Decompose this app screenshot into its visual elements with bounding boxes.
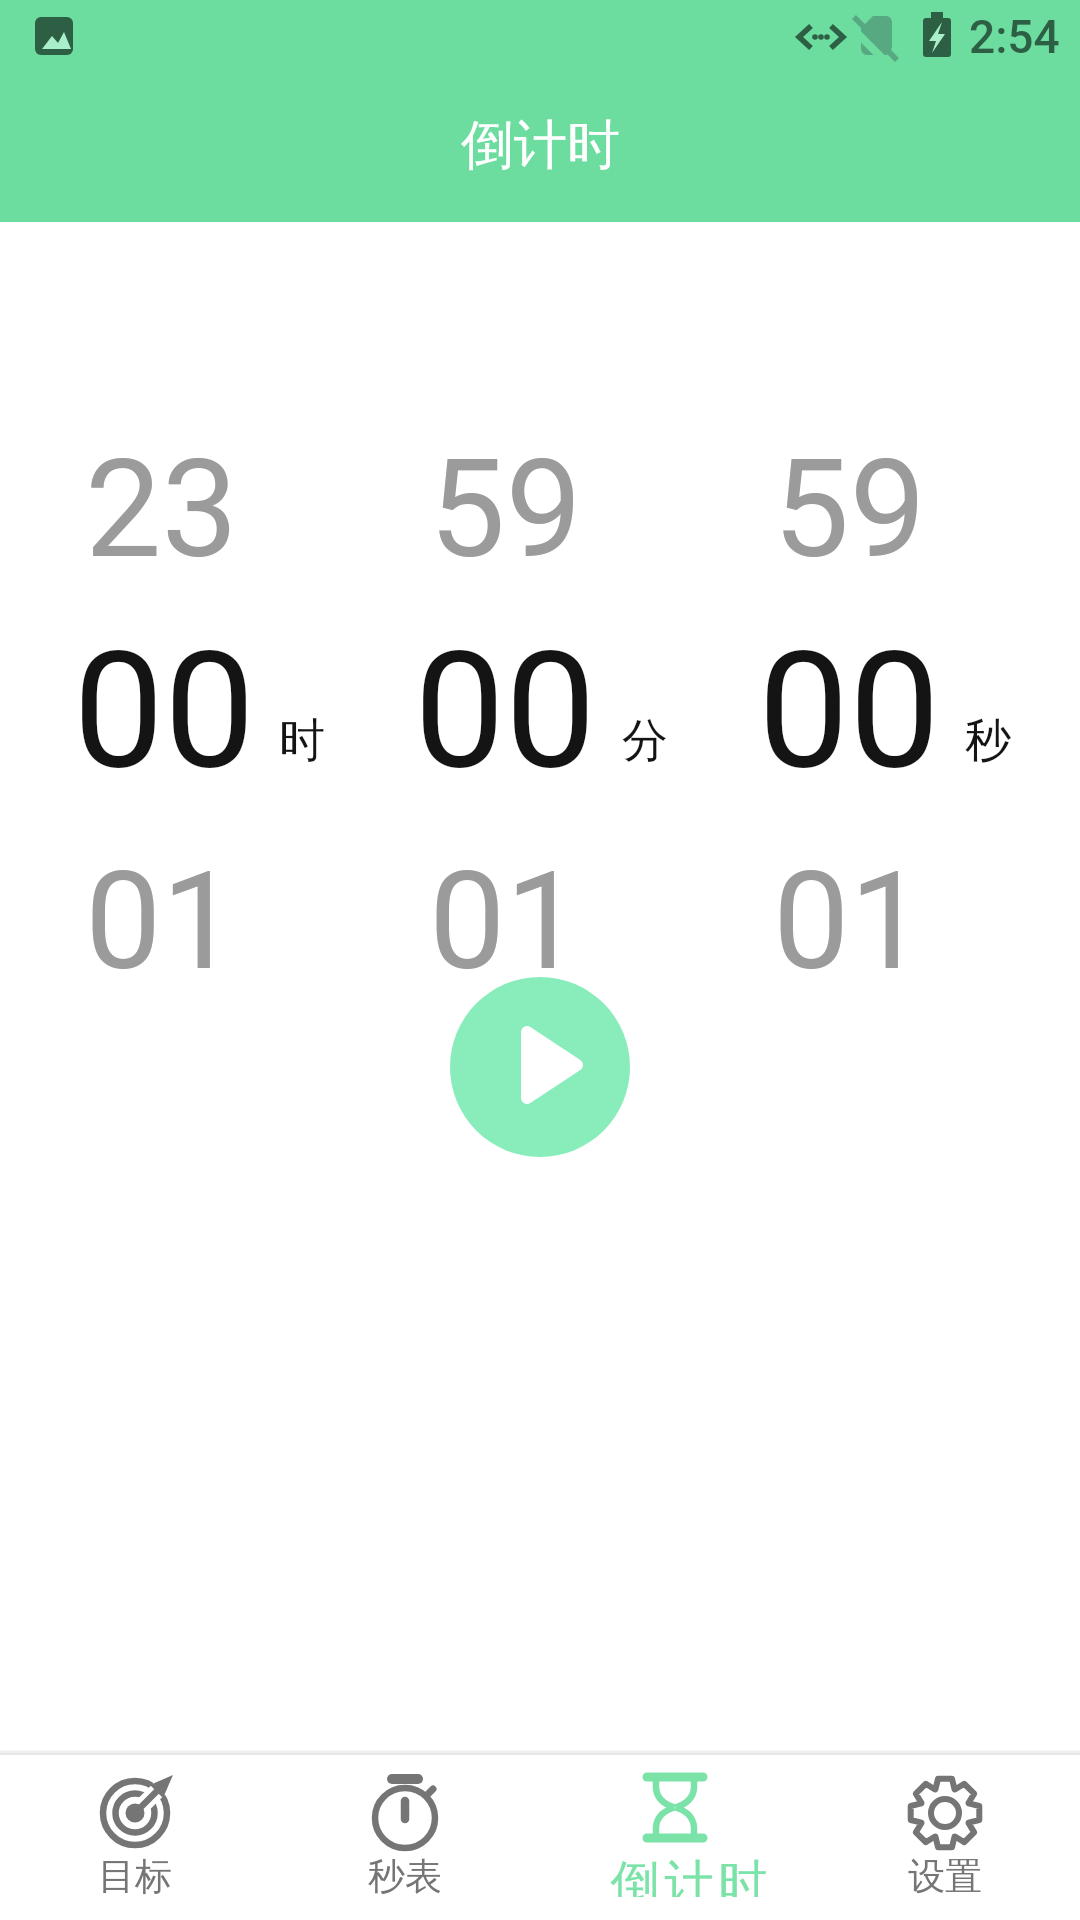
staticText: 秒 (965, 712, 1011, 770)
staticText: 01 (773, 842, 926, 1001)
staticText: 倒计时 (461, 112, 620, 179)
button[interactable]: 设置 (810, 1755, 1080, 1920)
staticText: 00 (73, 616, 256, 806)
staticText: 01 (85, 842, 238, 1001)
button[interactable]: 秒表 (270, 1755, 540, 1920)
staticText: 目标 (98, 1853, 172, 1897)
button[interactable]: 倒计时 (540, 1755, 810, 1920)
staticText: 设置 (908, 1853, 982, 1897)
staticText: 59 (429, 430, 582, 589)
staticText: 23 (85, 430, 238, 589)
staticText: 01 (429, 842, 582, 1001)
staticText: 00 (758, 616, 941, 806)
staticText: 秒表 (368, 1853, 442, 1897)
button[interactable] (450, 977, 630, 1157)
staticText: 分 (622, 712, 668, 770)
button[interactable]: 目标 (0, 1755, 270, 1920)
staticText: 2:54 (969, 10, 1060, 64)
staticText: 倒计时 (608, 1853, 770, 1897)
staticText: 59 (773, 430, 926, 589)
staticText: 00 (414, 616, 597, 806)
staticText: 时 (279, 712, 325, 770)
